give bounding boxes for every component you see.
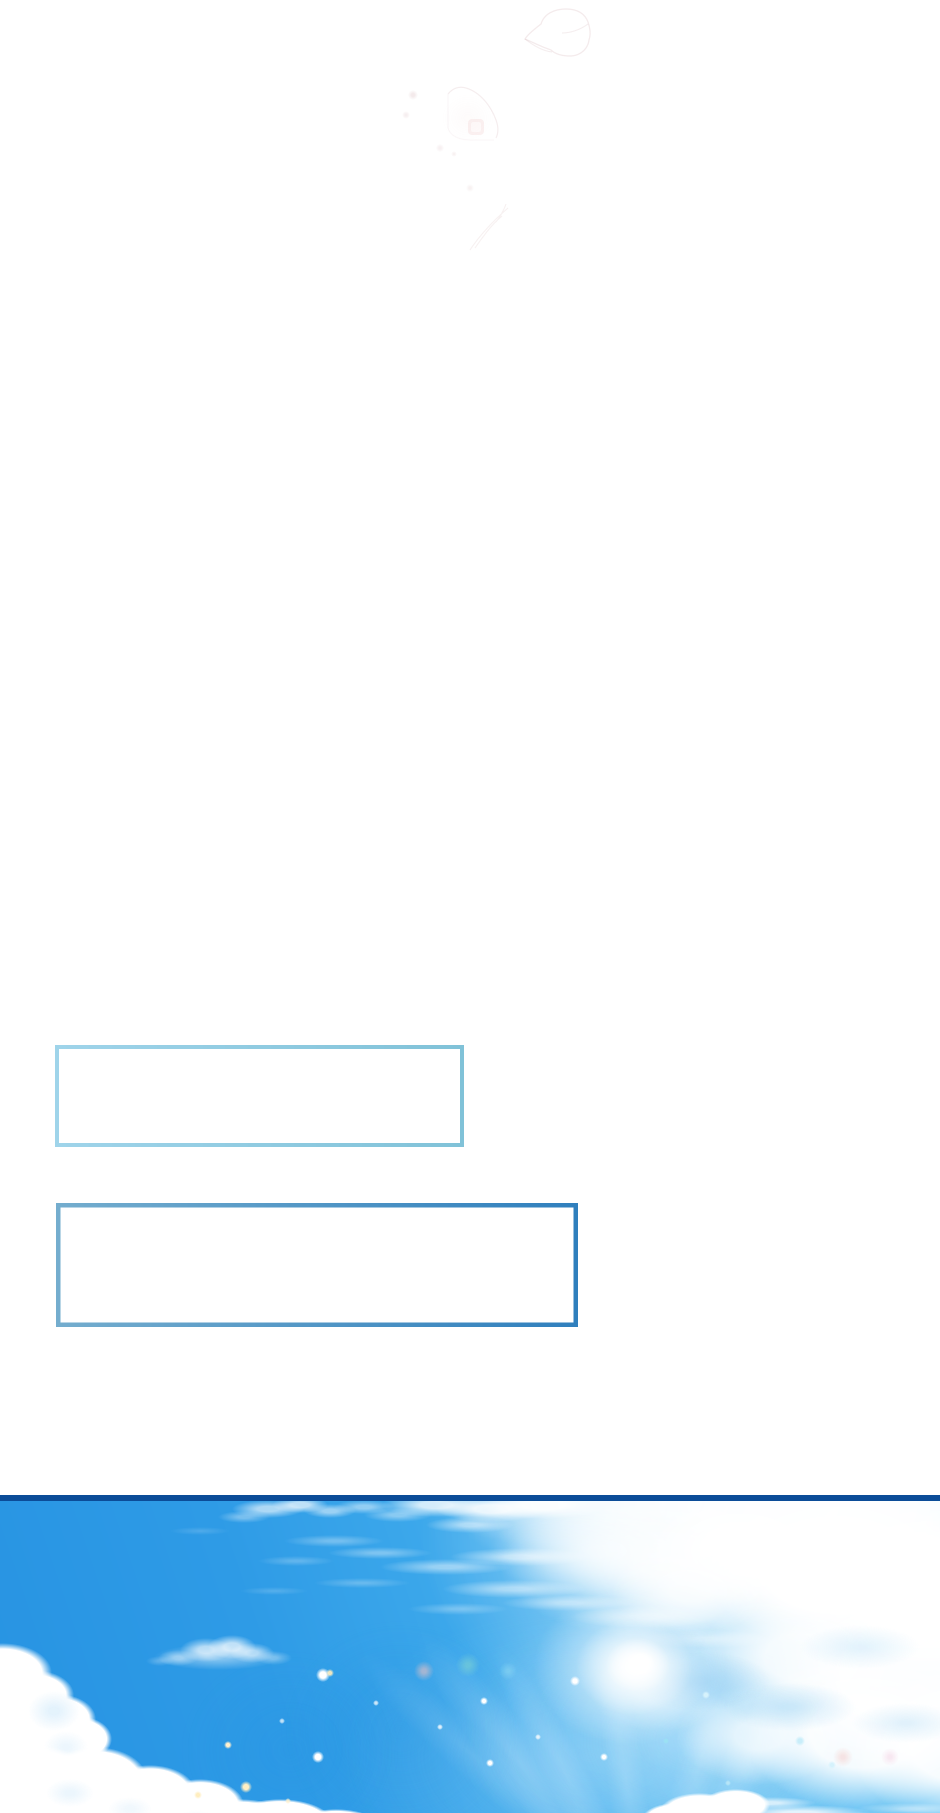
button[interactable]: [56, 1203, 578, 1327]
button[interactable]: [55, 1045, 464, 1147]
